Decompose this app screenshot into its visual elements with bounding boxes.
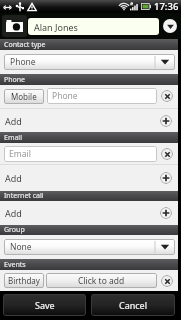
button[interactable]: Delete bbox=[161, 148, 173, 160]
button[interactable]: Birthday bbox=[4, 273, 44, 288]
staticText: Add bbox=[5, 172, 22, 184]
button[interactable]: Phone bbox=[47, 88, 157, 104]
staticText: Click to add bbox=[78, 275, 125, 287]
staticText: Mobile bbox=[11, 91, 37, 102]
staticText: Email bbox=[4, 133, 22, 143]
button[interactable]: Add bbox=[160, 115, 172, 127]
button[interactable]: Add bbox=[0, 109, 178, 132]
button[interactable]: Alan Jones bbox=[28, 18, 159, 35]
button[interactable]: Click to add bbox=[46, 273, 157, 288]
button[interactable]: Expand name fields bbox=[163, 19, 177, 33]
button[interactable]: Add bbox=[0, 165, 178, 191]
staticText: None bbox=[10, 241, 32, 253]
staticText: Email bbox=[9, 148, 31, 160]
staticText: Add bbox=[5, 207, 22, 219]
staticText: Add bbox=[5, 115, 22, 127]
button[interactable]: Email bbox=[4, 146, 157, 162]
staticText: Phone bbox=[4, 75, 26, 85]
staticText: Phone bbox=[10, 56, 36, 68]
staticText: Save bbox=[35, 299, 55, 311]
button[interactable]: Add bbox=[160, 172, 172, 184]
staticText: Birthday bbox=[8, 275, 40, 286]
staticText: Contact type bbox=[4, 40, 46, 50]
button[interactable]: Phone bbox=[4, 54, 175, 70]
staticText: Internet call bbox=[4, 191, 44, 201]
button[interactable]: Save bbox=[3, 294, 86, 316]
staticText: Phone bbox=[52, 90, 78, 102]
staticText: Events bbox=[4, 260, 26, 270]
button[interactable]: Mobile bbox=[4, 89, 44, 104]
staticText: Cancel bbox=[119, 299, 148, 311]
button[interactable]: Cancel bbox=[91, 294, 175, 316]
staticText: 17:36 bbox=[154, 0, 179, 13]
button[interactable]: None bbox=[4, 239, 175, 255]
button[interactable]: Delete bbox=[161, 275, 173, 287]
button[interactable]: Add bbox=[0, 201, 178, 225]
staticText: Alan Jones bbox=[34, 21, 78, 33]
button[interactable]: Add photo bbox=[2, 15, 27, 37]
button[interactable]: Delete bbox=[161, 90, 173, 102]
staticText: Group bbox=[4, 225, 25, 235]
button[interactable]: Add bbox=[160, 207, 172, 219]
